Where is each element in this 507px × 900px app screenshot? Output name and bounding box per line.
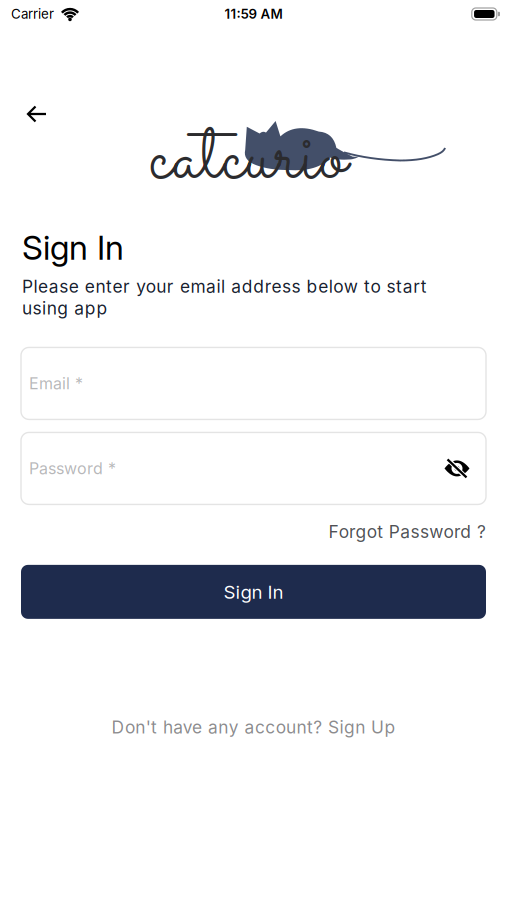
button[interactable]: Don't have any account? Sign Up [111,717,395,737]
staticText: Email * [29,374,83,393]
staticText: Password * [29,459,116,478]
button[interactable] [28,106,46,121]
button[interactable]: Sign In [21,565,486,619]
staticText: 11:59 AM [224,6,282,22]
staticText: Sign In [22,228,124,267]
button[interactable]: Password * [21,432,486,504]
staticText: Sign In [223,581,283,603]
staticText: Forgot Password ? [328,521,486,542]
staticText: Don't have any account? Sign Up [111,717,395,737]
button[interactable]: Email * [21,347,486,419]
staticText: Carrier [11,6,54,22]
button[interactable]: Forgot Password ? [316,521,486,542]
staticText: Please enter your email address below to… [22,276,427,318]
staticText: catcurio [149,98,347,222]
